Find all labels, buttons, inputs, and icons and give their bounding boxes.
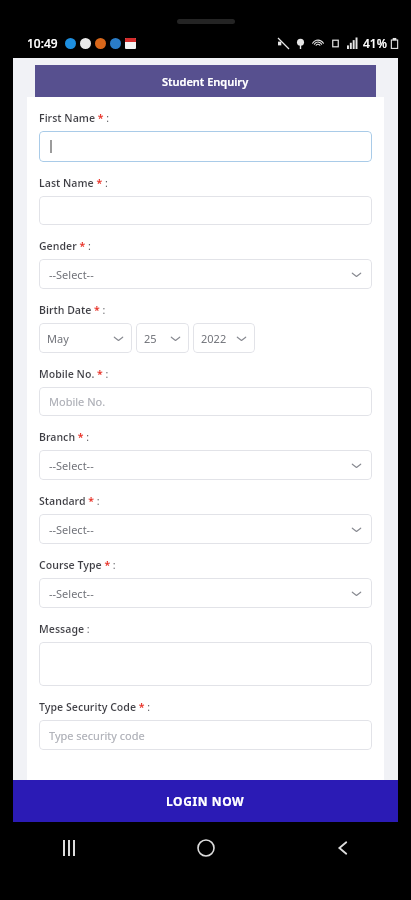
button[interactable]: --Select-- <box>39 578 372 608</box>
staticText: Birth Date * : <box>39 303 106 317</box>
staticText: First Name * : <box>39 111 110 125</box>
staticText: Type security code <box>49 728 145 743</box>
button[interactable]: 2022 <box>193 323 255 353</box>
button[interactable] <box>39 196 372 225</box>
staticText: Mobile No. * : <box>39 367 109 381</box>
staticText: Course Type * : <box>39 558 116 572</box>
button[interactable]: Student Enquiry <box>35 65 376 97</box>
staticText: --Select-- <box>49 522 94 537</box>
button[interactable]: LOGIN NOW <box>13 780 398 822</box>
staticText: 10:49 <box>27 35 58 51</box>
button[interactable]: Type security code <box>39 720 372 750</box>
button[interactable]: May <box>39 323 132 353</box>
button[interactable]: --Select-- <box>39 259 372 289</box>
staticText: Message : <box>39 622 90 636</box>
staticText: 41% <box>363 35 387 51</box>
button[interactable]: 25 <box>136 323 189 353</box>
staticText: 25 <box>144 331 157 346</box>
staticText: --Select-- <box>49 267 94 282</box>
button[interactable]: Home <box>182 824 230 872</box>
button[interactable]: Back <box>319 824 367 872</box>
staticText: --Select-- <box>49 458 94 473</box>
button[interactable]: --Select-- <box>39 514 372 544</box>
staticText: Last Name * : <box>39 176 108 190</box>
button[interactable] <box>39 131 372 162</box>
staticText: 2022 <box>201 331 227 346</box>
staticText: Student Enquiry <box>162 74 249 89</box>
staticText: LOGIN NOW <box>166 793 245 809</box>
staticText: Gender * : <box>39 239 91 253</box>
staticText: Mobile No. <box>49 394 106 409</box>
staticText: Branch * : <box>39 430 90 444</box>
staticText: Standard * : <box>39 494 100 508</box>
staticText: --Select-- <box>49 586 94 601</box>
staticText: May <box>47 331 69 346</box>
staticText: Type Security Code * : <box>39 700 150 714</box>
button[interactable]: Mobile No. <box>39 387 372 416</box>
button[interactable] <box>39 642 372 686</box>
button[interactable]: Recents <box>45 824 93 872</box>
button[interactable]: --Select-- <box>39 450 372 480</box>
